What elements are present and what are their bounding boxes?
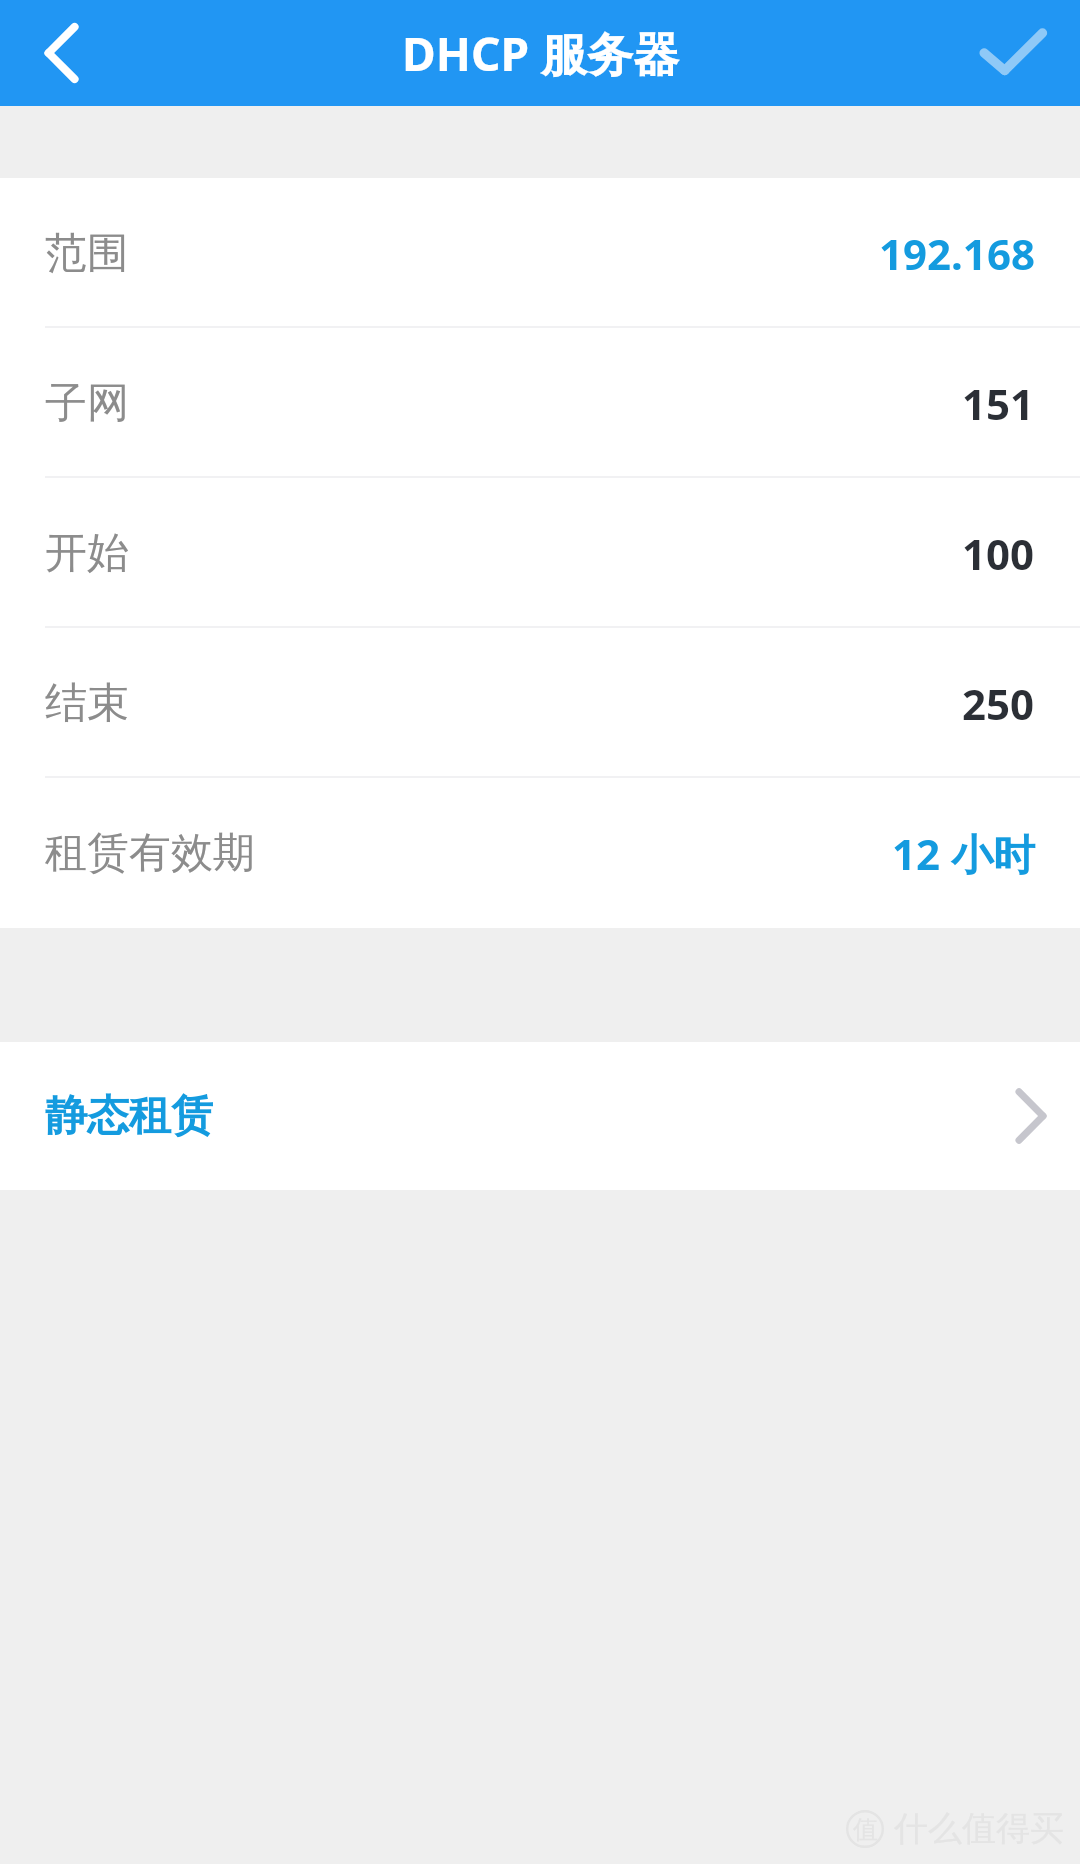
button[interactable]: Back bbox=[0, 0, 124, 106]
staticText: 结束 bbox=[45, 677, 129, 730]
button[interactable]: 开始 bbox=[0, 478, 1080, 628]
staticText: 151 bbox=[962, 375, 1035, 432]
staticText: 12 小时 bbox=[892, 825, 1035, 882]
staticText: 开始 bbox=[45, 527, 129, 580]
button[interactable]: 租赁有效期 bbox=[0, 778, 1080, 928]
button[interactable]: Confirm bbox=[946, 0, 1080, 106]
staticText: 什么值得买 bbox=[894, 1807, 1064, 1850]
button[interactable]: 静态租赁 bbox=[0, 1042, 1080, 1190]
staticText: DHCP 服务器 bbox=[402, 22, 679, 85]
staticText: 子网 bbox=[45, 377, 129, 430]
staticText: 100 bbox=[962, 525, 1035, 582]
staticText: 静态租赁 bbox=[45, 1090, 213, 1143]
staticText: 192.168 bbox=[879, 225, 1035, 282]
button[interactable]: 子网 bbox=[0, 328, 1080, 478]
staticText: 值 bbox=[853, 1814, 878, 1845]
staticText: 250 bbox=[962, 675, 1035, 732]
staticText: 租赁有效期 bbox=[45, 827, 255, 880]
button[interactable]: 范围 bbox=[0, 178, 1080, 328]
button[interactable]: 结束 bbox=[0, 628, 1080, 778]
staticText: 范围 bbox=[45, 227, 129, 280]
